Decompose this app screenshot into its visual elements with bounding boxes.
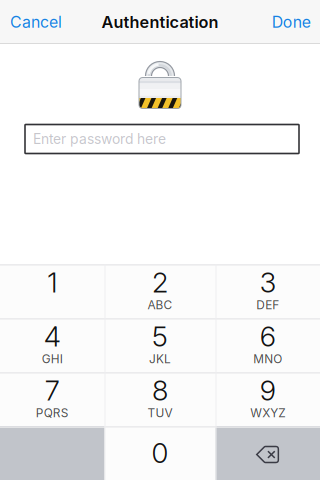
button[interactable]: 5 bbox=[105, 318, 215, 371]
staticText: MNO bbox=[253, 352, 282, 366]
button[interactable]: Cancel bbox=[0, 0, 90, 44]
button[interactable]: 1 bbox=[0, 264, 104, 317]
button[interactable]: 7 bbox=[0, 372, 104, 425]
staticText: ABC bbox=[147, 298, 172, 312]
button[interactable]: 0 bbox=[105, 426, 215, 480]
staticText: 0 bbox=[151, 436, 168, 470]
staticText: 9 bbox=[260, 374, 276, 407]
staticText: DEF bbox=[256, 298, 279, 312]
button[interactable]: 4 bbox=[0, 318, 104, 371]
button[interactable]: 3 bbox=[216, 264, 319, 317]
staticText: 7 bbox=[45, 374, 60, 407]
button[interactable]: 8 bbox=[105, 372, 215, 425]
staticText: 1 bbox=[47, 266, 57, 299]
button[interactable]: 2 bbox=[105, 264, 215, 317]
staticText: Cancel bbox=[10, 12, 62, 32]
staticText: 4 bbox=[44, 320, 61, 353]
staticText: Enter password here bbox=[33, 131, 166, 147]
staticText: 2 bbox=[152, 266, 168, 299]
staticText: GHI bbox=[42, 352, 63, 366]
staticText: JKL bbox=[149, 352, 171, 366]
button[interactable]: Done bbox=[240, 0, 320, 44]
staticText: 3 bbox=[260, 266, 276, 299]
staticText: 6 bbox=[260, 320, 276, 353]
staticText: WXYZ bbox=[250, 406, 285, 420]
button[interactable]: 6 bbox=[216, 318, 319, 371]
staticText: Done bbox=[272, 12, 311, 32]
button[interactable]: Delete bbox=[215, 426, 320, 480]
staticText: 5 bbox=[152, 320, 168, 353]
button[interactable]: 9 bbox=[216, 372, 319, 425]
staticText: 8 bbox=[152, 374, 168, 407]
staticText: Authentication bbox=[101, 12, 218, 32]
staticText: TUV bbox=[147, 406, 172, 420]
staticText: PQRS bbox=[36, 406, 69, 420]
